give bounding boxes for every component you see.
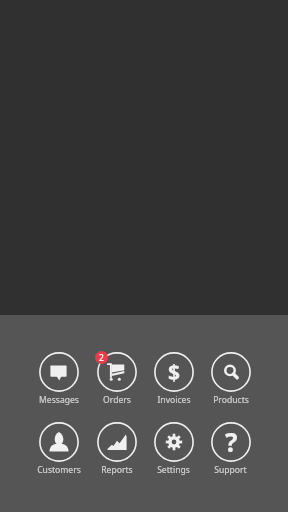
button[interactable]: Support	[202, 419, 259, 477]
staticText: Invoices	[157, 394, 191, 406]
button[interactable]: Messages	[30, 349, 88, 407]
staticText: Reports	[101, 464, 133, 476]
button[interactable]: Invoices	[145, 349, 202, 407]
button[interactable]: Settings	[145, 419, 202, 477]
staticText: 2	[99, 352, 104, 364]
staticText: Orders	[103, 394, 131, 406]
staticText: $	[168, 358, 181, 387]
staticText: Settings	[157, 464, 190, 476]
button[interactable]: Reports	[88, 419, 145, 477]
staticText: Support	[214, 464, 247, 476]
button[interactable]: Orders	[88, 349, 145, 407]
button[interactable]: Customers	[30, 419, 88, 477]
staticText: Products	[213, 394, 249, 406]
staticText: ?	[225, 424, 238, 459]
staticText: Customers	[37, 464, 81, 476]
staticText: Messages	[39, 394, 79, 406]
button[interactable]: Products	[202, 349, 259, 407]
